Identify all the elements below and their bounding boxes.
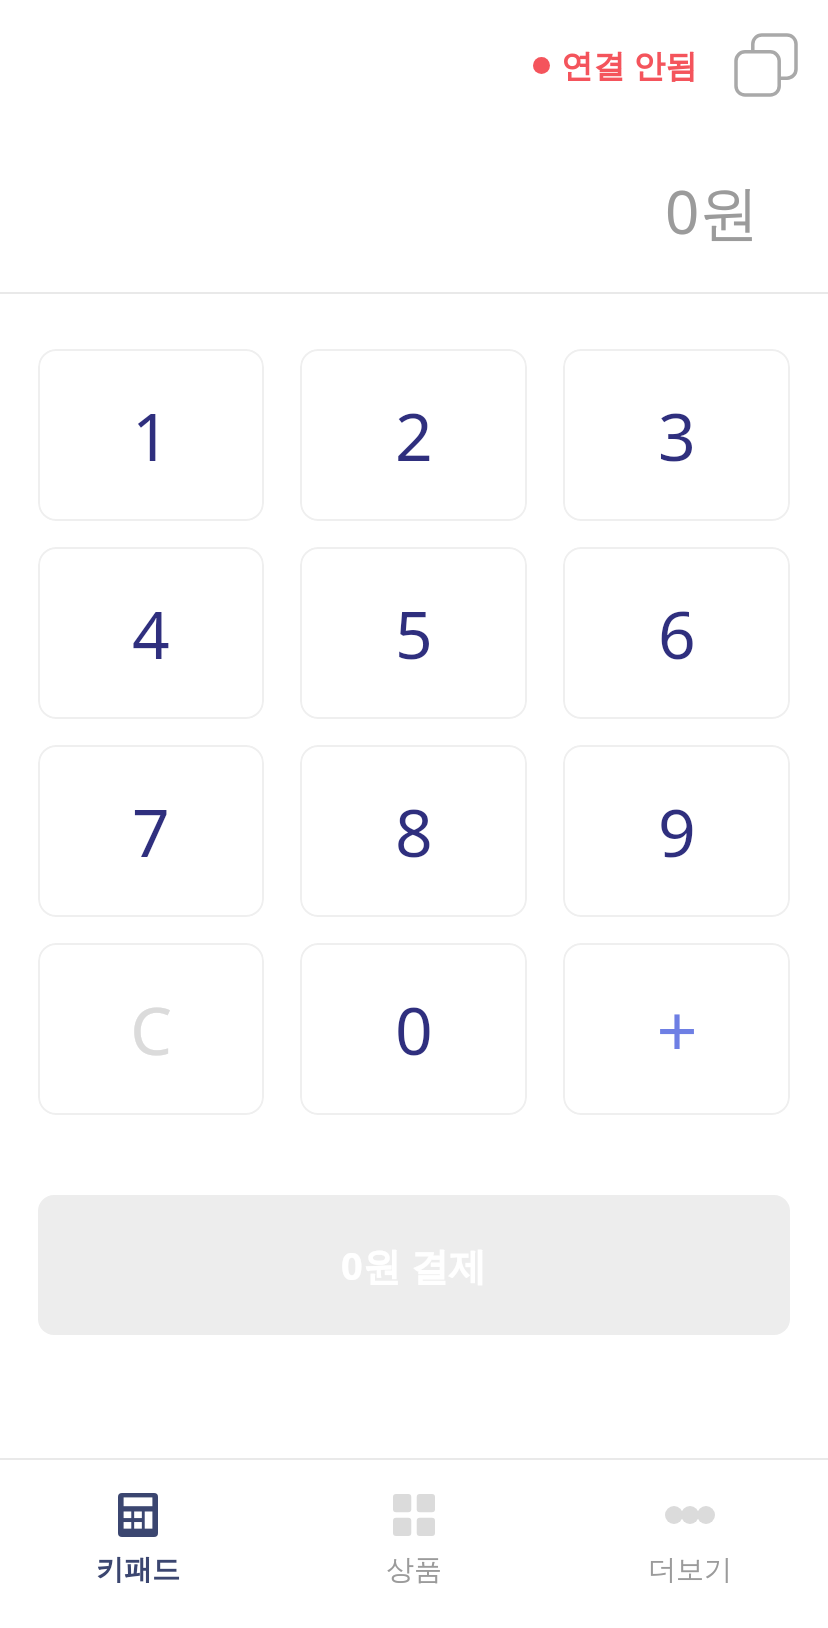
- button[interactable]: 1: [38, 349, 264, 521]
- button[interactable]: 0: [300, 943, 527, 1115]
- button[interactable]: 2: [300, 349, 527, 521]
- staticText: 8: [395, 786, 433, 876]
- staticText: 0: [395, 984, 433, 1074]
- staticText: 0원 결제: [341, 1239, 487, 1291]
- button[interactable]: 4: [38, 547, 264, 719]
- staticText: 키패드: [96, 1552, 180, 1587]
- staticText: C: [130, 984, 172, 1074]
- button[interactable]: Products tab: [276, 1460, 552, 1628]
- staticText: 5: [395, 588, 433, 678]
- button[interactable]: 연결 안됨: [533, 43, 698, 87]
- staticText: 1: [132, 390, 170, 480]
- staticText: 9: [658, 786, 696, 876]
- staticText: 0원: [665, 170, 760, 252]
- staticText: 3: [658, 390, 696, 480]
- button[interactable]: 6: [563, 547, 790, 719]
- staticText: 2: [395, 390, 433, 480]
- button[interactable]: More tab: [552, 1460, 828, 1628]
- button[interactable]: 9: [563, 745, 790, 917]
- staticText: 더보기: [648, 1552, 732, 1587]
- button[interactable]: +: [563, 943, 790, 1115]
- button[interactable]: Keypad tab: [0, 1460, 276, 1628]
- button[interactable]: Receipts: [726, 25, 806, 105]
- staticText: 7: [132, 786, 170, 876]
- button[interactable]: 5: [300, 547, 527, 719]
- staticText: 6: [658, 588, 696, 678]
- button[interactable]: 7: [38, 745, 264, 917]
- button[interactable]: 8: [300, 745, 527, 917]
- staticText: +: [656, 980, 698, 1078]
- staticText: 연결 안됨: [561, 43, 698, 87]
- button[interactable]: 3: [563, 349, 790, 521]
- staticText: 상품: [386, 1552, 442, 1587]
- staticText: 4: [132, 588, 170, 678]
- button[interactable]: C: [38, 943, 264, 1115]
